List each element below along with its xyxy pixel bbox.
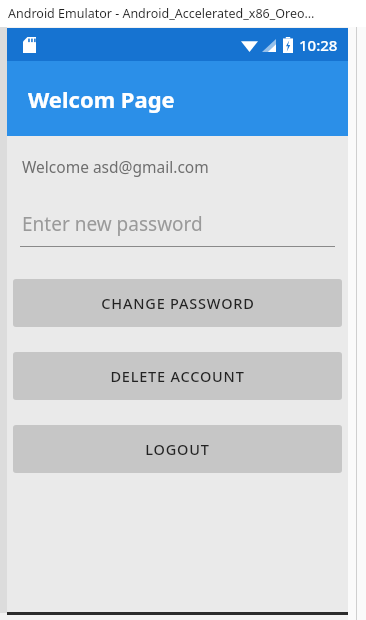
button[interactable]: LOGOUT bbox=[13, 425, 342, 473]
staticText: LOGOUT bbox=[145, 439, 210, 459]
staticText: Android Emulator - Android_Accelerated_x… bbox=[8, 5, 315, 22]
button[interactable]: DELETE ACCOUNT bbox=[13, 352, 342, 400]
staticText: DELETE ACCOUNT bbox=[110, 366, 245, 386]
staticText: CHANGE PASSWORD bbox=[101, 293, 255, 313]
button[interactable]: Enter new password bbox=[20, 211, 335, 247]
staticText: 10:28 bbox=[299, 35, 338, 55]
staticText: Welcome asd@gmail.com bbox=[22, 156, 209, 177]
staticText: Enter new password bbox=[22, 211, 203, 237]
staticText: Welcom Page bbox=[28, 84, 175, 114]
button[interactable]: CHANGE PASSWORD bbox=[13, 279, 342, 327]
